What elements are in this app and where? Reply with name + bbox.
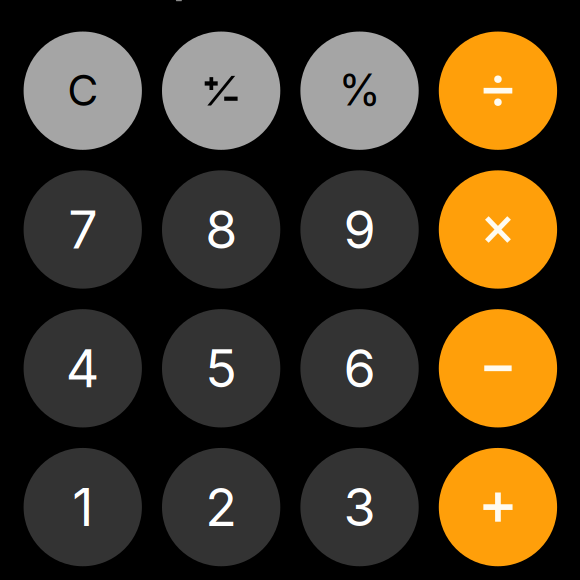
button[interactable]: % (300, 31, 419, 150)
staticText: 2 (205, 476, 237, 538)
button[interactable]: Add (439, 448, 557, 566)
button[interactable]: Divide (439, 31, 557, 150)
button[interactable]: 3 (300, 448, 419, 566)
button[interactable]: Multiply (439, 170, 557, 289)
button[interactable]: 7 (24, 170, 142, 289)
button[interactable]: 6 (300, 309, 419, 427)
button[interactable]: 4 (24, 309, 142, 427)
staticText: 7 (68, 198, 97, 261)
staticText: 3 (344, 476, 376, 538)
staticText: % (339, 64, 381, 116)
button[interactable]: 5 (162, 309, 280, 427)
staticText: C (67, 64, 98, 116)
staticText: 9 (344, 198, 376, 261)
button[interactable]: 8 (162, 170, 280, 289)
button[interactable]: 1 (24, 448, 142, 566)
button[interactable]: 9 (300, 170, 419, 289)
staticText: 5 (205, 337, 237, 400)
button[interactable]: 2 (162, 448, 280, 566)
button[interactable]: Toggle sign (162, 31, 280, 150)
staticText: 1 (72, 476, 93, 538)
button[interactable]: C (24, 31, 142, 150)
button[interactable]: Subtract (439, 309, 557, 427)
staticText: 4 (66, 337, 100, 400)
staticText: 6 (344, 337, 376, 400)
staticText: 8 (205, 198, 237, 261)
